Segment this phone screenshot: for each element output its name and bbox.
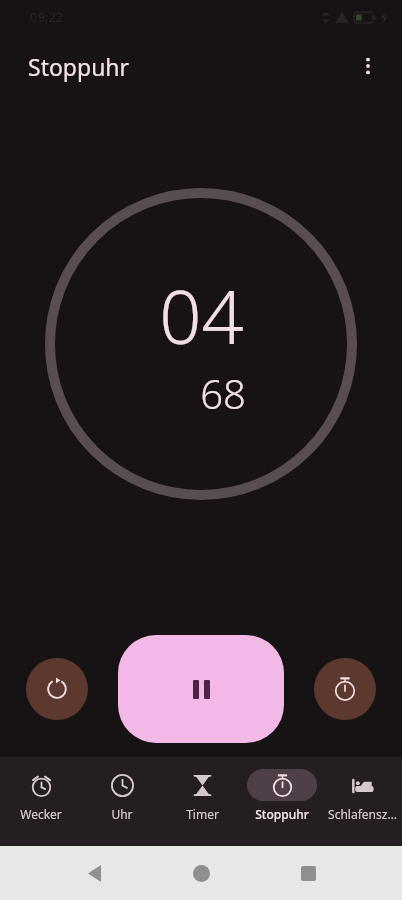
button[interactable]: Schlafensz… [322, 757, 402, 822]
staticText: Wecker [20, 806, 62, 822]
button[interactable]: Wecker [0, 757, 81, 822]
button[interactable]: Weitere Optionen [346, 44, 390, 88]
staticText: Uhr [111, 806, 133, 822]
staticText: Stoppuhr [28, 51, 130, 82]
staticText: 68 [200, 366, 246, 420]
button[interactable]: Letzte Apps [286, 851, 330, 895]
staticText: Schlafensz… [328, 806, 397, 822]
staticText: Stoppuhr [255, 806, 309, 822]
button[interactable]: Stoppuhr [242, 757, 322, 822]
staticText: 04 [159, 265, 244, 366]
button[interactable]: Runde [314, 658, 376, 720]
staticText: Timer [186, 806, 219, 822]
staticText: 09:22 [30, 8, 64, 26]
button[interactable]: Zurücksetzen [26, 658, 88, 720]
button[interactable]: Pause [118, 635, 284, 743]
button[interactable]: Uhr [81, 757, 162, 822]
button[interactable]: Zurück [72, 851, 116, 895]
button[interactable]: Timer [162, 757, 242, 822]
button[interactable]: Startbildschirm [179, 851, 223, 895]
